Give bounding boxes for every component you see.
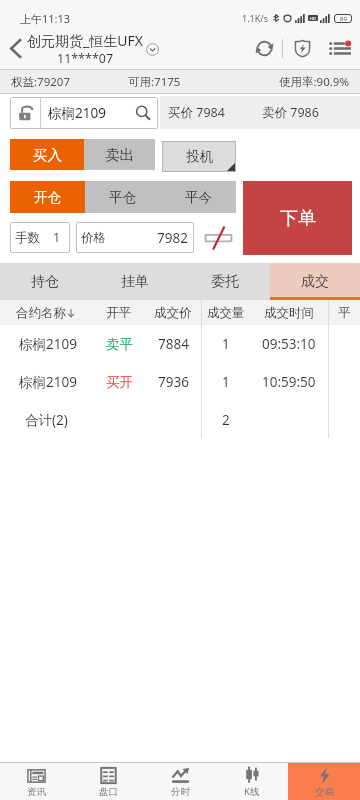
button[interactable]: 投机 <box>162 141 236 172</box>
staticText: 1.1K/s <box>242 12 268 24</box>
button[interactable]: 开仓 <box>10 181 85 213</box>
staticText: 平今 <box>185 189 212 206</box>
staticText: 合约名称 <box>16 305 66 321</box>
button[interactable]: 交易 <box>288 763 360 800</box>
button[interactable]: 盘口 <box>72 763 144 800</box>
staticText: 下单 <box>280 207 316 230</box>
staticText: 上午11:13 <box>20 11 71 26</box>
button[interactable]: 持仓 <box>0 263 90 300</box>
staticText: 棕榈2109 <box>19 335 77 353</box>
staticText: 手数 <box>15 230 40 246</box>
staticText: 交易 <box>315 786 334 798</box>
staticText: 7884 <box>158 335 189 353</box>
staticText: 89 <box>340 15 347 23</box>
button[interactable]: 分时 <box>144 763 216 800</box>
staticText: 价格 <box>81 230 106 246</box>
staticText: 委托 <box>211 273 239 291</box>
staticText: 买价 7984 <box>168 104 225 121</box>
staticText: 平仓 <box>109 189 136 206</box>
staticText: 成交 <box>301 273 329 291</box>
staticText: 成交价 <box>154 305 192 321</box>
staticText: 合计(2) <box>25 411 68 429</box>
button[interactable]: 棕榈2109 <box>10 97 158 129</box>
button[interactable]: 手数 <box>10 222 70 253</box>
button[interactable]: 安全 <box>287 28 318 69</box>
staticText: 1 <box>222 373 230 391</box>
button[interactable]: 买入 <box>10 139 84 170</box>
staticText: HD <box>310 16 316 21</box>
staticText: 挂单 <box>121 273 149 291</box>
staticText: 卖出 <box>105 146 134 164</box>
button[interactable]: 平今 <box>160 181 236 213</box>
staticText: K线 <box>244 785 260 798</box>
button[interactable]: 棕榈2109 <box>0 325 360 363</box>
staticText: 10:59:50 <box>262 373 316 391</box>
button[interactable]: 刷新 <box>248 28 280 69</box>
button[interactable]: 卖出 <box>84 139 155 170</box>
button[interactable]: 创元期货_恒生UFX <box>27 31 159 67</box>
staticText: 创元期货_恒生UFX <box>27 31 143 50</box>
staticText: 7936 <box>158 373 189 391</box>
button[interactable]: 返回 <box>0 28 32 69</box>
staticText: 11****07 <box>57 50 114 67</box>
staticText: 成交量 <box>207 305 245 321</box>
staticText: 买入 <box>33 146 62 164</box>
staticText: 7982 <box>157 229 188 247</box>
staticText: 开仓 <box>34 189 61 206</box>
button[interactable]: 价格 <box>76 222 194 253</box>
staticText: 棕榈2109 <box>48 104 128 122</box>
staticText: 09:53:10 <box>262 335 316 353</box>
staticText: 资讯 <box>27 786 46 798</box>
staticText: 买开 <box>106 374 133 391</box>
staticText: 2 <box>222 411 230 429</box>
staticText: 分时 <box>171 786 190 798</box>
staticText: 平 <box>338 305 351 321</box>
staticText: 持仓 <box>31 273 59 291</box>
button[interactable]: 下单 <box>243 181 352 255</box>
staticText: 棕榈2109 <box>19 373 77 391</box>
button[interactable]: 资讯 <box>0 763 72 800</box>
button[interactable]: K线 <box>216 763 288 800</box>
staticText: 使用率:90.9% <box>279 74 349 90</box>
button[interactable]: 挂单 <box>90 263 180 300</box>
button[interactable]: 平仓 <box>85 181 160 213</box>
button[interactable]: 菜单 <box>324 28 356 69</box>
staticText: 1 <box>222 335 230 353</box>
staticText: 权益:79207 <box>11 74 70 90</box>
staticText: 卖价 7986 <box>262 104 319 121</box>
staticText: 投机 <box>186 148 213 165</box>
staticText: 盘口 <box>99 786 118 798</box>
button[interactable]: 委托 <box>180 263 270 300</box>
staticText: 成交时间 <box>264 305 314 321</box>
button[interactable]: 成交 <box>270 263 360 300</box>
button[interactable]: 棕榈2109 <box>0 363 360 401</box>
staticText: 1 <box>53 229 61 246</box>
staticText: 开平 <box>106 305 131 321</box>
staticText: 卖平 <box>106 336 133 353</box>
button[interactable]: 禁用 <box>205 226 232 250</box>
staticText: 可用:7175 <box>128 74 181 90</box>
